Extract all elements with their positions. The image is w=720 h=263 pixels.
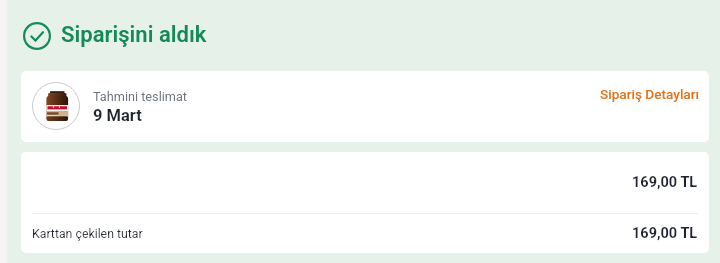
staticText: 169,00 TL [632,225,698,242]
button[interactable]: Sipariş Detayları [598,84,702,104]
button[interactable]: Tahmini teslimat [21,71,709,142]
staticText: Siparişini aldık [61,21,207,47]
staticText: 9 Mart [93,106,142,125]
staticText: 169,00 TL [632,174,698,191]
staticText: Sipariş Detayları [600,86,700,102]
staticText: Tahmini teslimat [93,89,187,104]
staticText: Karttan çekilen tutar [32,227,143,241]
